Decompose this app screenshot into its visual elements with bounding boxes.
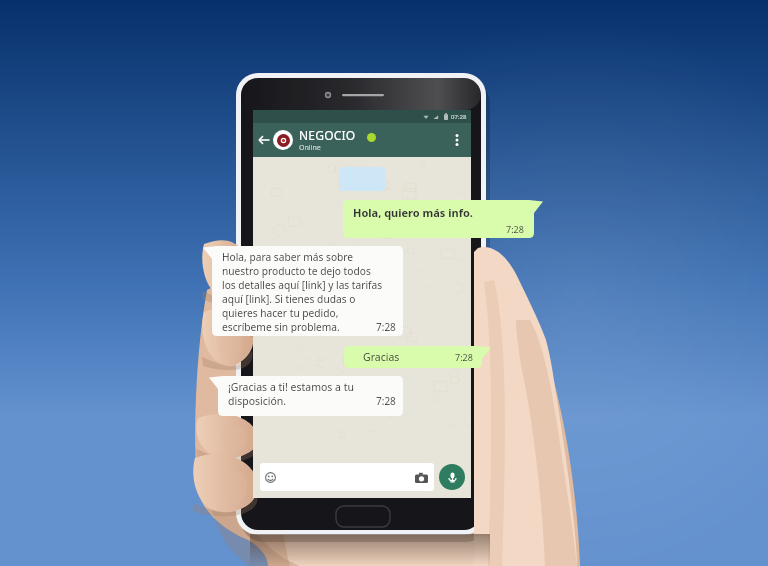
button[interactable]: Gracias	[344, 346, 491, 368]
staticText: nuestro producto te dejo todos	[222, 264, 371, 278]
staticText: Hola, para saber más sobre	[222, 250, 354, 264]
button[interactable]: More options	[448, 131, 466, 149]
staticText: disposición.	[228, 394, 287, 408]
staticText: quieres hacer tu pedido,	[222, 306, 339, 320]
staticText: Gracias	[363, 350, 400, 364]
button[interactable]: Back	[257, 133, 271, 147]
button[interactable]: Back	[253, 123, 471, 157]
staticText: 7:28	[376, 320, 396, 333]
staticText: Online	[299, 143, 321, 153]
staticText: aquí [link]. Si tienes dudas o	[222, 292, 356, 306]
staticText: Hola, quiero más info.	[353, 205, 473, 220]
button[interactable]	[260, 463, 434, 491]
staticText: 7:28	[376, 394, 396, 408]
staticText: los detalles aquí [link] y las tarifas	[222, 278, 383, 292]
staticText: 07:28	[451, 113, 467, 121]
button[interactable]: ¡Gracias a ti! estamos a tu	[209, 376, 403, 416]
button[interactable]: Hola, quiero más info.	[343, 200, 543, 238]
staticText: ¡Gracias a ti! estamos a tu	[228, 380, 355, 394]
staticText: NEGOCIO	[299, 127, 356, 143]
staticText: escríbeme sin problema.	[222, 320, 340, 333]
button[interactable]: Hola, para saber más sobre	[203, 246, 403, 336]
staticText: 7:28	[506, 223, 524, 235]
button[interactable]: Voice message	[439, 464, 465, 490]
staticText: 7:28	[455, 351, 473, 363]
